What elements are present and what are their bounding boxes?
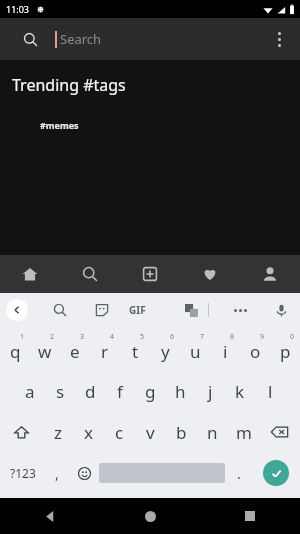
staticText: h: [175, 380, 186, 403]
staticText: t: [132, 340, 139, 363]
staticText: o: [250, 340, 261, 363]
button[interactable]: e: [60, 326, 90, 370]
staticText: c: [115, 421, 124, 444]
staticText: s: [56, 380, 65, 403]
button[interactable]: b: [166, 412, 197, 452]
staticText: u: [190, 340, 201, 363]
button[interactable]: w: [30, 326, 60, 370]
staticText: w: [38, 340, 52, 363]
staticText: 5: [140, 332, 145, 342]
button[interactable]: Search: [48, 298, 72, 322]
staticText: 3: [80, 332, 85, 342]
button[interactable]: Back: [6, 299, 28, 321]
button[interactable]: Backspace: [259, 412, 300, 452]
button[interactable]: j: [195, 370, 225, 412]
button[interactable]: u: [180, 326, 210, 370]
staticText: b: [176, 421, 187, 444]
staticText: z: [54, 421, 62, 444]
staticText: 1: [20, 332, 25, 342]
staticText: 2: [50, 332, 55, 342]
button[interactable]: Recents: [200, 498, 300, 534]
button[interactable]: l: [255, 370, 285, 412]
button[interactable]: a: [15, 370, 45, 412]
button[interactable]: i: [210, 326, 240, 370]
button[interactable]: g: [135, 370, 165, 412]
staticText: j: [208, 380, 213, 403]
staticText: q: [10, 340, 21, 363]
button[interactable]: Stickers: [90, 298, 114, 322]
button[interactable]: #memes: [0, 112, 300, 138]
button[interactable]: GIF: [129, 303, 146, 317]
staticText: f: [117, 380, 123, 403]
button[interactable]: z: [42, 412, 73, 452]
staticText: 0: [290, 332, 295, 342]
button[interactable]: h: [165, 370, 195, 412]
staticText: k: [235, 380, 245, 403]
staticText: ?123: [10, 465, 36, 481]
button[interactable]: k: [225, 370, 255, 412]
button[interactable]: r: [90, 326, 120, 370]
button[interactable]: q: [0, 326, 30, 370]
staticText: x: [84, 421, 93, 444]
staticText: a: [25, 380, 35, 403]
staticText: 8: [230, 332, 235, 342]
staticText: g: [145, 380, 156, 403]
button[interactable]: Shift: [0, 412, 42, 452]
button[interactable]: p: [270, 326, 300, 370]
button[interactable]: More: [228, 298, 252, 322]
staticText: 9: [260, 332, 265, 342]
staticText: p: [280, 340, 291, 363]
staticText: i: [223, 340, 228, 363]
button[interactable]: Profile: [240, 255, 300, 293]
staticText: l: [268, 380, 273, 403]
staticText: e: [70, 340, 80, 363]
staticText: 7: [200, 332, 205, 342]
staticText: 6: [170, 332, 175, 342]
button[interactable]: Translate: [180, 299, 202, 321]
staticText: .: [237, 464, 241, 483]
button[interactable]: f: [105, 370, 135, 412]
button[interactable]: v: [135, 412, 166, 452]
staticText: 4: [110, 332, 115, 342]
button[interactable]: More options: [266, 26, 292, 52]
button[interactable]: Emoji: [69, 452, 99, 494]
staticText: ,: [55, 464, 59, 483]
button[interactable]: Search: [60, 255, 120, 293]
button[interactable]: d: [75, 370, 105, 412]
button[interactable]: Enter: [263, 460, 289, 486]
staticText: n: [207, 421, 218, 444]
staticText: #memes: [40, 119, 79, 131]
staticText: r: [101, 340, 109, 363]
button[interactable]: y: [150, 326, 180, 370]
staticText: v: [146, 421, 155, 444]
button[interactable]: Add post: [120, 255, 180, 293]
button[interactable]: s: [45, 370, 75, 412]
button[interactable]: ?123: [0, 452, 45, 494]
staticText: y: [161, 340, 170, 363]
button[interactable]: x: [73, 412, 104, 452]
button[interactable]: Home: [100, 498, 200, 534]
staticText: m: [236, 421, 252, 444]
button[interactable]: Voice input: [270, 299, 292, 321]
button[interactable]: m: [228, 412, 259, 452]
staticText: 11:03: [6, 3, 30, 15]
button[interactable]: Back: [0, 498, 100, 534]
button[interactable]: Likes: [180, 255, 240, 293]
button[interactable]: t: [120, 326, 150, 370]
button[interactable]: ,: [45, 452, 69, 494]
staticText: Search: [60, 30, 102, 48]
button[interactable]: c: [104, 412, 135, 452]
button[interactable]: o: [240, 326, 270, 370]
staticText: Trending #tags: [12, 74, 126, 96]
button[interactable]: Search: [18, 27, 42, 51]
staticText: d: [85, 380, 96, 403]
button[interactable]: .: [225, 452, 252, 494]
button[interactable]: Home: [0, 255, 60, 293]
button[interactable]: n: [197, 412, 228, 452]
